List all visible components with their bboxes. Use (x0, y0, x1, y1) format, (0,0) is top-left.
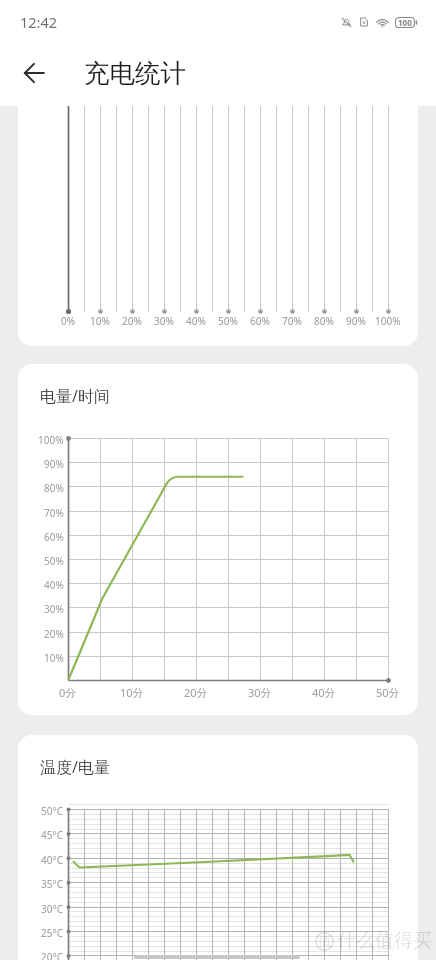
staticText: 12:42 (20, 12, 58, 32)
staticText: 20% (122, 314, 142, 328)
staticText: 80% (44, 481, 64, 495)
staticText: 50分 (376, 685, 400, 700)
button[interactable]: Back (10, 49, 58, 97)
staticText: 70% (44, 506, 64, 520)
staticText: 40% (44, 578, 64, 592)
staticText: 45°C (41, 828, 64, 842)
staticText: 值 (318, 933, 332, 951)
staticText: 100 (398, 17, 412, 28)
staticText: 10% (44, 651, 64, 665)
staticText: 60% (250, 314, 270, 328)
staticText: 20分 (184, 685, 208, 700)
staticText: 电量/时间 (40, 385, 110, 407)
staticText: 50% (218, 314, 238, 328)
staticText: 90% (44, 457, 64, 471)
staticText: 100% (375, 314, 401, 328)
staticText: 40分 (312, 685, 336, 700)
staticText: 充电统计 (84, 57, 186, 89)
staticText: 35°C (41, 877, 64, 891)
staticText: 100% (38, 433, 64, 447)
staticText: 80% (314, 314, 334, 328)
staticText: 90% (346, 314, 366, 328)
staticText: 温度/电量 (40, 756, 110, 778)
staticText: 50°C (41, 804, 64, 818)
button[interactable]: 0% (18, 106, 418, 346)
button[interactable]: 电量/时间 (18, 364, 418, 715)
staticText: 40% (186, 314, 206, 328)
staticText: 30% (154, 314, 174, 328)
staticText: 40°C (41, 853, 64, 867)
staticText: 30分 (248, 685, 272, 700)
staticText: 30°C (41, 902, 64, 916)
staticText: 0% (61, 314, 76, 328)
staticText: 20°C (41, 950, 64, 960)
staticText: 60% (44, 530, 64, 544)
staticText: 0分 (59, 685, 77, 700)
staticText: 30% (44, 602, 64, 616)
staticText: 10% (90, 314, 110, 328)
staticText: 25°C (41, 926, 64, 940)
staticText: 70% (282, 314, 302, 328)
staticText: 20% (44, 627, 64, 641)
staticText: 10分 (120, 685, 144, 700)
button[interactable]: 温度/电量 (18, 735, 418, 960)
staticText: 什么值得买 (337, 929, 432, 953)
staticText: 50% (44, 554, 64, 568)
